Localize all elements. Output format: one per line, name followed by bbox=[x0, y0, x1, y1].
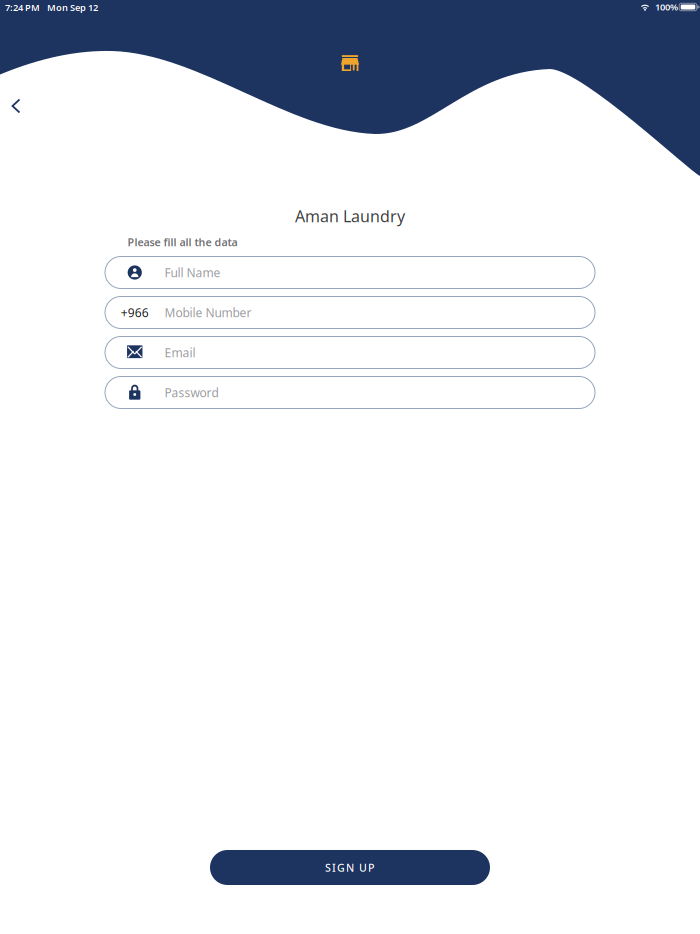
button[interactable]: Full Name bbox=[105, 256, 595, 288]
staticText: Aman Laundry bbox=[295, 205, 405, 227]
staticText: Password bbox=[164, 384, 218, 400]
staticText: Full Name bbox=[164, 264, 220, 280]
button[interactable]: Email bbox=[105, 336, 595, 368]
button[interactable]: Back bbox=[1, 88, 30, 123]
staticText: Email bbox=[164, 344, 195, 360]
staticText: Please fill all the data bbox=[127, 235, 237, 249]
staticText: 7:24 PM bbox=[5, 1, 40, 14]
staticText: Mon Sep 12 bbox=[47, 1, 98, 14]
staticText: Mobile Number bbox=[164, 304, 251, 320]
staticText: 100% bbox=[655, 1, 678, 13]
button[interactable]: +966 bbox=[105, 296, 595, 328]
staticText: SIGN UP bbox=[325, 860, 375, 875]
staticText: +966 bbox=[121, 304, 149, 320]
button[interactable]: SIGN UP bbox=[210, 850, 490, 885]
button[interactable]: Password bbox=[105, 376, 595, 408]
